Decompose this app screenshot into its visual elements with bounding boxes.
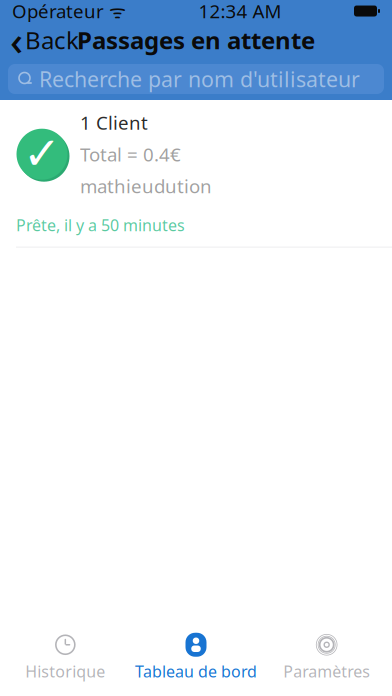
staticText: Prête, il y a 50 minutes <box>16 214 185 236</box>
staticText: mathieudution <box>80 174 212 198</box>
staticText: Total = 0.4€ <box>80 142 181 167</box>
button[interactable]: ✓ <box>0 100 392 248</box>
button[interactable]: ‹ <box>0 22 89 58</box>
staticText: Back <box>25 24 79 56</box>
staticText: 12:34 AM <box>198 0 281 23</box>
staticText: Paramètres <box>283 661 370 682</box>
staticText: ‹ <box>10 13 23 66</box>
staticText: Tableau de bord <box>135 661 257 682</box>
staticText: ✓ <box>23 127 61 179</box>
button[interactable]: Recherche par nom d'utilisateur <box>8 64 384 94</box>
button[interactable]: Tableau de bord <box>131 628 261 687</box>
staticText: Opérateur ᯤ <box>12 0 126 23</box>
staticText: 1 Client <box>80 110 148 135</box>
staticText: Passages en attente <box>77 24 315 56</box>
staticText: Recherche par nom d'utilisateur <box>39 65 360 93</box>
button[interactable]: Paramètres <box>261 628 392 687</box>
staticText: Historique <box>25 661 105 682</box>
button[interactable]: Historique <box>0 628 131 687</box>
